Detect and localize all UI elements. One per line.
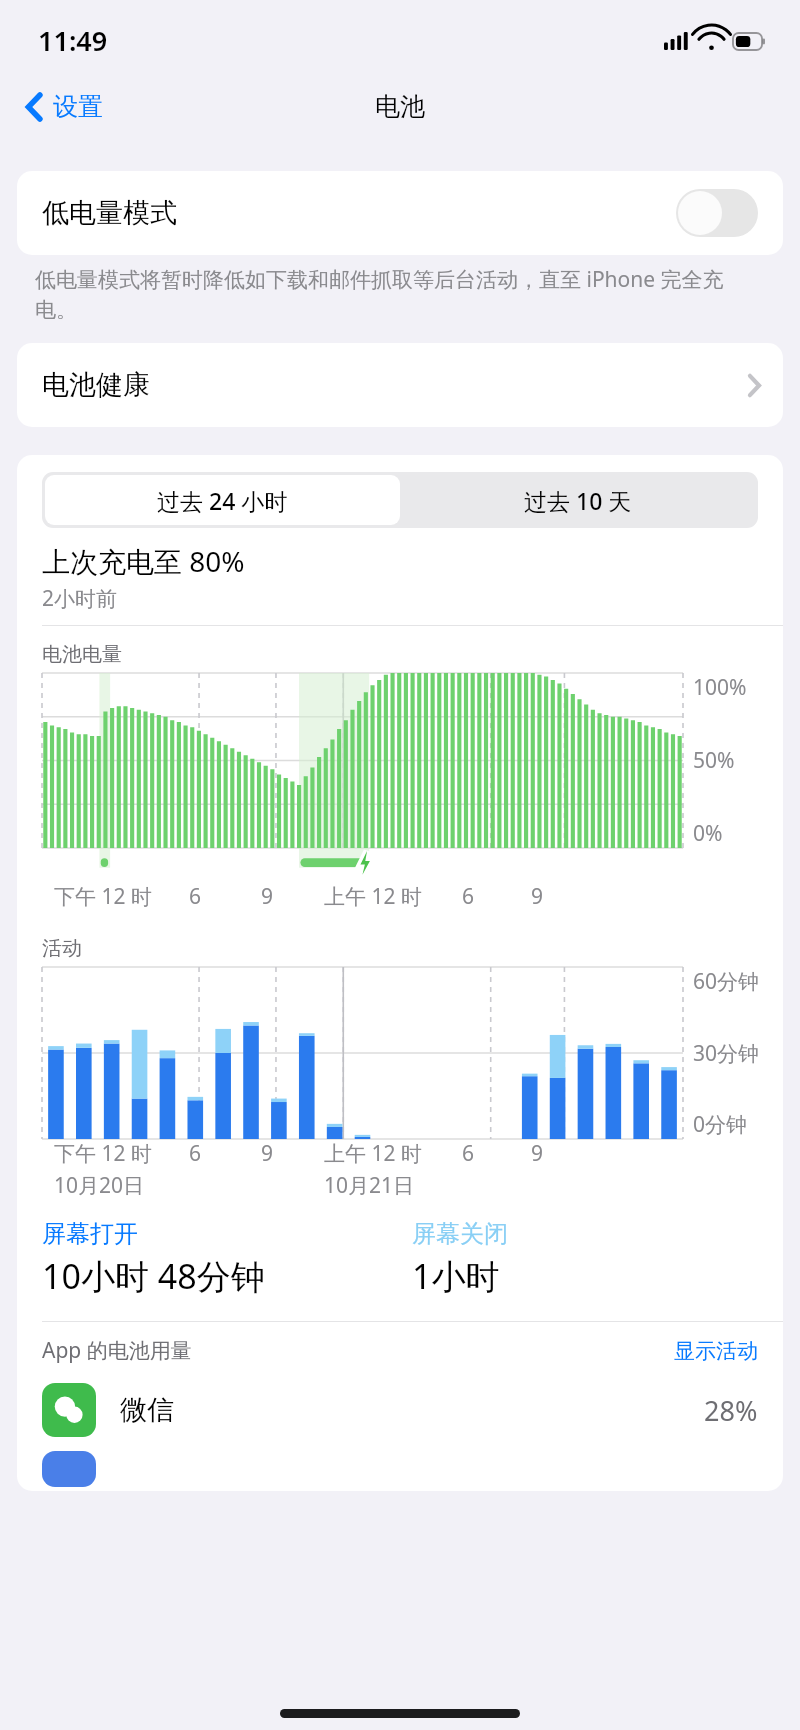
button[interactable] [17,1451,783,1491]
staticText: 30分钟 [693,1039,760,1068]
button[interactable]: 过去 10 天 [400,475,755,525]
button[interactable]: 过去 24 小时 [45,475,400,525]
staticText: 电池电量 [42,642,122,667]
button[interactable]: 显示活动 [674,1338,758,1364]
staticText: 60分钟 [693,967,760,996]
staticText: 下午 12 时 [54,882,152,911]
staticText: 28% [704,1392,758,1429]
staticText: 2小时前 [42,584,118,613]
staticText: 低电量模式 [42,196,177,230]
staticText: 0分钟 [693,1110,748,1139]
staticText: 电池 [375,91,425,122]
staticText: 过去 24 小时 [157,485,288,516]
staticText: 9 [261,1139,274,1168]
staticText: 显示活动 [674,1338,758,1364]
staticText: 低电量模式将暂时降低如下载和邮件抓取等后台活动，直至 iPhone 完全充电。 [35,265,765,323]
staticText: 0% [693,819,723,848]
button[interactable]: 电池健康 [17,343,783,427]
staticText: 6 [462,882,475,911]
staticText: 活动 [42,936,82,961]
staticText: 上次充电至 80% [42,542,245,580]
staticText: 10月21日 [324,1171,415,1200]
staticText: 上午 12 时 [324,882,422,911]
staticText: 6 [189,882,202,911]
staticText: 6 [462,1139,475,1168]
staticText: 9 [531,882,544,911]
button[interactable]: 设置 [18,87,111,126]
staticText: 1小时 [412,1253,500,1299]
staticText: 设置 [53,91,103,122]
staticText: 9 [261,882,274,911]
staticText: 电池健康 [42,368,150,402]
button[interactable] [676,189,758,237]
staticText: 屏幕关闭 [412,1219,508,1249]
staticText: 屏幕打开 [42,1219,138,1249]
staticText: 下午 12 时 [54,1139,152,1168]
staticText: 9 [531,1139,544,1168]
button[interactable]: 低电量模式 [17,171,783,255]
staticText: 上午 12 时 [324,1139,422,1168]
staticText: 10月20日 [54,1171,145,1200]
staticText: 100% [693,673,747,702]
button[interactable]: 微信 [17,1379,783,1441]
staticText: 6 [189,1139,202,1168]
staticText: 微信 [120,1393,174,1427]
staticText: 11:49 [38,22,108,59]
staticText: App 的电池用量 [42,1336,192,1365]
staticText: 过去 10 天 [524,485,632,516]
staticText: 50% [693,746,735,775]
staticText: 10小时 48分钟 [42,1253,265,1299]
